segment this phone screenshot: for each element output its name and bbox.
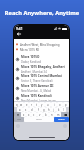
button[interactable]: Backspace — [61, 112, 69, 117]
staticText: i — [54, 103, 55, 107]
button[interactable]: d — [29, 107, 35, 112]
button[interactable]: h — [46, 107, 51, 112]
staticText: n — [51, 113, 53, 117]
staticText: v — [39, 113, 41, 117]
button[interactable]: s — [23, 107, 29, 112]
staticText: Reach Anywhere, Anytime — [0, 9, 84, 17]
staticText: b — [45, 113, 47, 117]
staticText: w — [20, 103, 23, 107]
staticText: o — [59, 103, 61, 107]
staticText: Micra 1015O — [21, 55, 40, 59]
staticText: j — [53, 108, 54, 112]
button[interactable]: i — [51, 102, 57, 107]
staticText: a — [19, 108, 21, 112]
button[interactable]: w — [19, 102, 24, 107]
button[interactable]: Micra 1015O — [14, 54, 69, 64]
staticText: h — [48, 108, 50, 112]
button[interactable]: x — [26, 112, 31, 117]
staticText: Micra 1015 Central Mumbai — [21, 74, 62, 78]
button[interactable]: j — [51, 107, 56, 112]
staticText: r — [31, 103, 33, 107]
button[interactable]: Microphone — [63, 124, 67, 128]
staticText: c — [33, 113, 35, 117]
staticText: p — [65, 103, 67, 107]
staticText: f — [38, 108, 39, 112]
staticText: search — [58, 118, 65, 121]
staticText: y — [41, 103, 43, 107]
button[interactable]: Back — [16, 31, 22, 37]
button[interactable]: Emoji — [16, 124, 20, 128]
staticText: g — [43, 108, 45, 112]
staticText: q — [16, 103, 18, 107]
button[interactable]: f — [35, 107, 41, 112]
staticText: x — [28, 113, 30, 117]
button[interactable]: Micra 1015 Bhagalsy, Andheri — [14, 64, 69, 74]
button[interactable]: Micra 1015 Avenue III — [14, 83, 69, 93]
staticText: Micra 1015 RE — [20, 48, 40, 52]
staticText: Navi Mumbai, Lorem ipsum — [21, 99, 56, 103]
button[interactable]: z — [21, 112, 26, 117]
staticText: Sector 3, Thane Kandivali — [21, 79, 53, 83]
staticText: Andheri, Mumbai 34 — [21, 70, 47, 74]
button[interactable]: 123 — [14, 117, 24, 122]
button[interactable]: e — [24, 102, 29, 107]
button[interactable]: Andheri West, Mira Shopping Complex — [14, 42, 69, 47]
button[interactable]: g — [41, 107, 46, 112]
button[interactable]: Micra 1015 Central Mumbai — [14, 73, 69, 83]
button[interactable]: Shift — [14, 112, 21, 117]
button[interactable]: c — [31, 112, 37, 117]
staticText: l — [63, 108, 64, 112]
staticText: Micra 1015 Bhagalsy, Andheri — [21, 65, 65, 69]
button[interactable]: k — [56, 107, 61, 112]
button[interactable]: p — [63, 102, 69, 107]
button[interactable]: a — [17, 107, 23, 112]
staticText: m — [57, 113, 60, 117]
staticText: z — [23, 113, 25, 117]
staticText: 9:41 — [16, 26, 23, 30]
button[interactable]: q — [14, 102, 19, 107]
button[interactable]: Micra 1015 RE — [14, 47, 69, 52]
button[interactable]: l — [61, 107, 66, 112]
staticText: Micra 1015 Avenue III — [21, 84, 54, 88]
button[interactable]: space — [24, 117, 54, 122]
staticText: 123 — [17, 118, 21, 121]
staticText: d — [31, 108, 33, 112]
button[interactable]: v — [37, 112, 43, 117]
staticText: t — [36, 103, 37, 107]
button[interactable]: b — [43, 112, 49, 117]
button[interactable]: Micra 1015 Kandivali — [14, 93, 69, 103]
button[interactable]: search — [54, 117, 69, 122]
staticText: space — [36, 118, 42, 121]
button[interactable]: u — [45, 102, 51, 107]
button[interactable]: n — [49, 112, 55, 117]
button[interactable]: y — [39, 102, 45, 107]
staticText: New Mumbai - G, Malad — [21, 89, 52, 93]
staticText: Andheri West, Mira Shopping Complex — [20, 43, 67, 47]
button[interactable]: r — [29, 102, 34, 107]
staticText: Dadar, Kandivali — [21, 60, 42, 64]
staticText: k — [58, 108, 60, 112]
staticText: Micra 1015 Kandivali — [21, 94, 52, 98]
staticText: s — [25, 108, 27, 112]
button[interactable]: t — [34, 102, 39, 107]
button[interactable]: m — [55, 112, 61, 117]
button[interactable]: o — [57, 102, 63, 107]
staticText: e — [26, 103, 28, 107]
staticText: u — [47, 103, 49, 107]
